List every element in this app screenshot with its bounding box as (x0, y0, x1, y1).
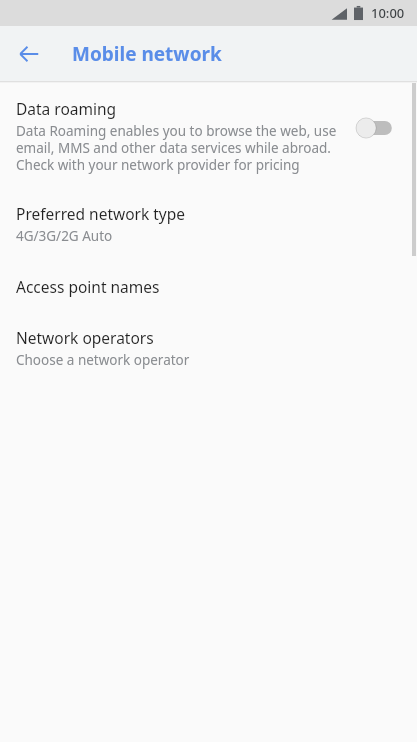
staticText: Preferred network type (16, 203, 186, 224)
button[interactable]: Back (10, 35, 48, 73)
staticText: Mobile network (72, 41, 222, 67)
staticText: 4G/3G/2G Auto (16, 227, 113, 245)
staticText: Access point names (16, 276, 160, 297)
button[interactable]: Data roaming toggle (355, 116, 401, 140)
staticText: Choose a network operator (16, 351, 190, 369)
staticText: Data roaming (16, 98, 117, 119)
staticText: Data Roaming enables you to browse the w… (16, 122, 343, 174)
button[interactable]: Data roaming (0, 96, 417, 176)
button[interactable]: Preferred network type (0, 202, 417, 246)
button[interactable]: Access point names (0, 275, 417, 298)
staticText: 10:00 (371, 4, 405, 22)
button[interactable]: Network operators (0, 326, 417, 370)
staticText: Network operators (16, 327, 154, 348)
